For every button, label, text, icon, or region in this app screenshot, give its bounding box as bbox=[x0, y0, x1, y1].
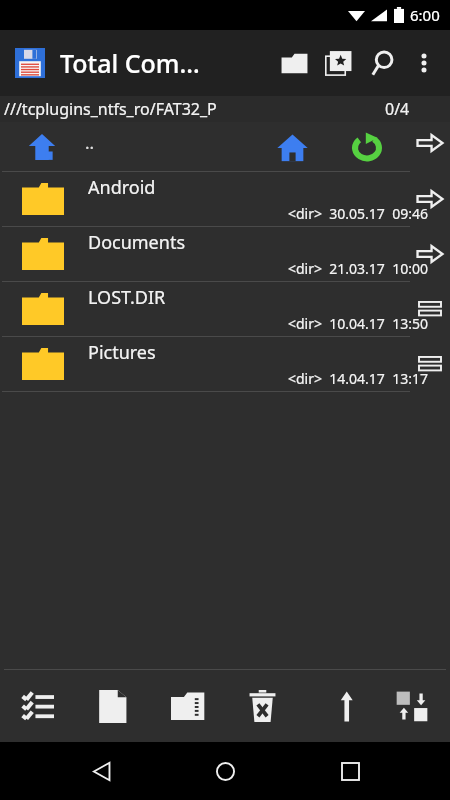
staticText: Documents bbox=[88, 230, 186, 255]
staticText: LOST.DIR bbox=[88, 285, 166, 310]
staticText: .. bbox=[85, 131, 95, 154]
button[interactable]: Pictures bbox=[0, 337, 450, 391]
button[interactable]: Row options bbox=[410, 337, 450, 391]
button[interactable]: Refresh bbox=[345, 125, 389, 169]
button[interactable]: Bookmarks bbox=[316, 41, 360, 85]
staticText: Android bbox=[88, 175, 156, 200]
staticText: ///tcplugins_ntfs_ro/FAT32_P bbox=[4, 98, 217, 120]
staticText: 0/4 bbox=[385, 98, 410, 120]
button[interactable]: Back bbox=[77, 747, 125, 795]
button[interactable]: Open in other panel bbox=[410, 123, 450, 163]
button[interactable]: Select all bbox=[0, 670, 75, 742]
staticText: <dir> 14.04.17 13:17 bbox=[288, 369, 428, 388]
button[interactable]: Search bbox=[360, 41, 404, 85]
button[interactable]: Move bbox=[375, 670, 450, 742]
staticText: <dir> 10.04.17 13:50 bbox=[288, 314, 428, 333]
button[interactable]: ///tcplugins_ntfs_ro/FAT32_P bbox=[0, 96, 450, 122]
button[interactable]: Documents bbox=[0, 227, 450, 281]
button[interactable]: Home bbox=[270, 125, 314, 169]
button[interactable]: Recent apps bbox=[326, 747, 374, 795]
staticText: <dir> 21.03.17 10:00 bbox=[288, 259, 428, 278]
button[interactable]: Row options bbox=[410, 282, 450, 336]
staticText: <dir> 30.05.17 09:46 bbox=[288, 204, 428, 223]
staticText: Total Com… bbox=[60, 46, 200, 80]
button[interactable]: More options bbox=[404, 43, 444, 83]
button[interactable]: Zip folder bbox=[150, 670, 225, 742]
button[interactable]: Open in other panel bbox=[410, 227, 450, 281]
button[interactable]: Open folder bbox=[272, 41, 316, 85]
button[interactable]: New file bbox=[75, 670, 150, 742]
button[interactable]: Delete bbox=[225, 670, 300, 742]
button[interactable]: Home bbox=[201, 747, 249, 795]
staticText: Pictures bbox=[88, 340, 156, 365]
button[interactable]: Up one level bbox=[22, 127, 62, 167]
staticText: 6:00 bbox=[410, 5, 440, 25]
button[interactable]: Android bbox=[0, 172, 450, 226]
button[interactable]: Sort bbox=[300, 670, 375, 742]
button[interactable] bbox=[14, 47, 46, 79]
button[interactable]: LOST.DIR bbox=[0, 282, 450, 336]
button[interactable]: Open in other panel bbox=[410, 172, 450, 226]
